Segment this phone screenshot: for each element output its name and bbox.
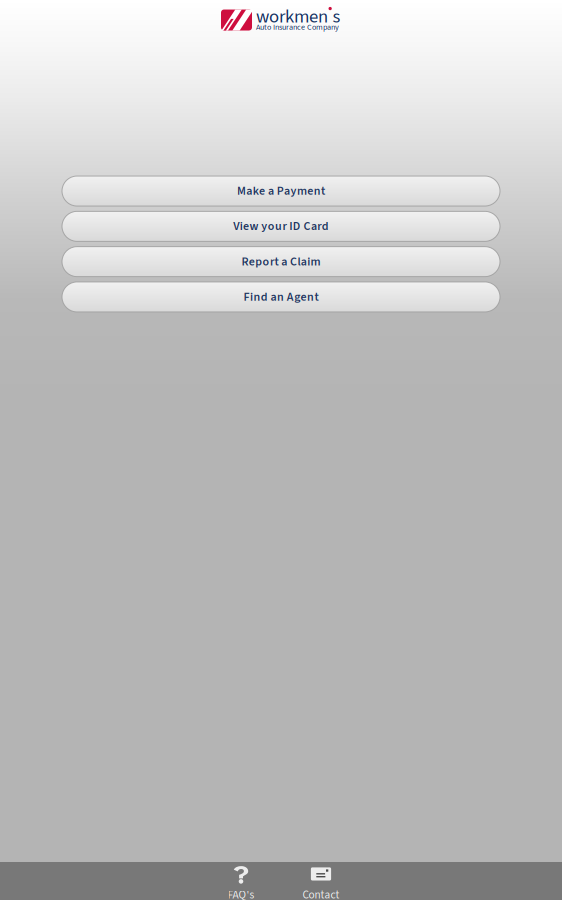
- staticText: Auto Insurance Company: [256, 21, 339, 33]
- button[interactable]: Make a Payment: [62, 176, 500, 206]
- button[interactable]: View your ID Card: [62, 211, 500, 241]
- button[interactable]: Contact: [281, 862, 361, 900]
- staticText: Make a Payment: [237, 182, 325, 200]
- staticText: FAQ's: [227, 887, 254, 900]
- button[interactable]: Report a Claim: [62, 247, 500, 277]
- button[interactable]: FAQ's: [201, 862, 281, 900]
- staticText: workmen: [256, 3, 328, 30]
- staticText: Report a Claim: [241, 253, 321, 270]
- staticText: s: [332, 3, 340, 30]
- button[interactable]: Find an Agent: [62, 282, 500, 312]
- staticText: View your ID Card: [233, 218, 329, 235]
- staticText: Find an Agent: [244, 288, 318, 305]
- staticText: Contact: [302, 887, 339, 900]
